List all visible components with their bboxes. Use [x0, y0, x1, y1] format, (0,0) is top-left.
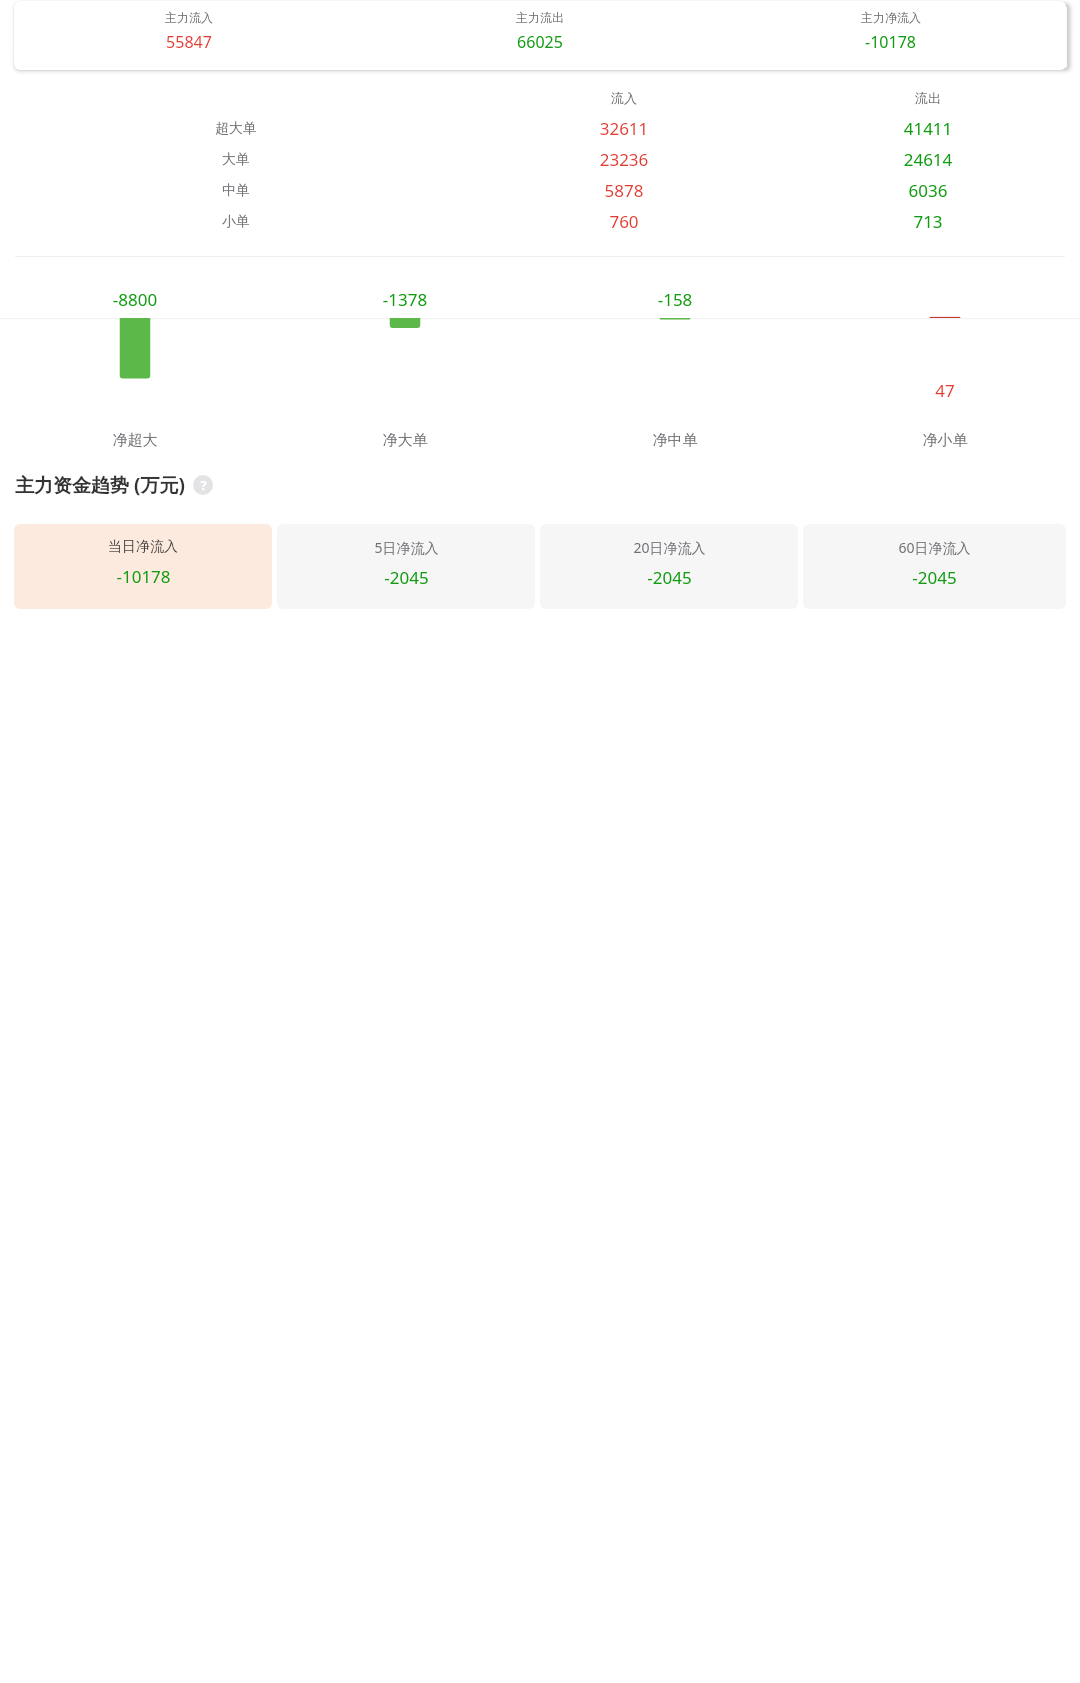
staticText: 主力净流入 — [861, 10, 921, 25]
staticText: 当日净流入 — [108, 538, 178, 556]
staticText: 流入 — [472, 90, 776, 106]
staticText: 大单 — [222, 151, 250, 169]
staticText: 主力资金趋势 (万元) — [15, 472, 185, 498]
staticText: 24614 — [776, 148, 1080, 171]
staticText: 超大单 — [215, 120, 257, 138]
button[interactable]: 大单 — [0, 144, 1080, 175]
staticText: 66025 — [517, 31, 563, 53]
staticText: 55847 — [166, 31, 212, 53]
staticText: 净超大 — [0, 431, 270, 450]
button[interactable]: 当日净流入 — [14, 524, 272, 609]
staticText: -10178 — [865, 31, 916, 53]
staticText: -158 — [540, 288, 810, 311]
staticText: 净大单 — [270, 431, 540, 450]
staticText: 中单 — [222, 182, 250, 200]
staticText: 5878 — [472, 179, 776, 202]
staticText: 23236 — [472, 148, 776, 171]
staticText: 小单 — [222, 213, 250, 231]
button[interactable]: 60日净流入 — [803, 524, 1066, 609]
staticText: 760 — [472, 210, 776, 233]
button[interactable]: 主力流入 — [14, 1, 1066, 70]
button[interactable]: 超大单 — [0, 113, 1080, 144]
staticText: 5日净流入 — [374, 538, 439, 557]
staticText: 6036 — [776, 179, 1080, 202]
staticText: 41411 — [776, 117, 1080, 140]
staticText: 47 — [810, 379, 1080, 397]
staticText: 20日净流入 — [633, 538, 706, 557]
staticText: ? — [200, 476, 207, 494]
button[interactable]: 帮助 — [193, 475, 213, 495]
staticText: -2045 — [647, 566, 692, 589]
staticText: 32611 — [472, 117, 776, 140]
staticText: -1378 — [270, 288, 540, 311]
staticText: 60日净流入 — [898, 538, 971, 557]
staticText: -2045 — [384, 566, 429, 589]
staticText: -10178 — [116, 565, 171, 588]
staticText: 流出 — [776, 90, 1080, 106]
staticText: 净中单 — [540, 431, 810, 450]
staticText: 主力流出 — [516, 10, 564, 25]
staticText: -8800 — [0, 288, 270, 311]
button[interactable]: 20日净流入 — [540, 524, 798, 609]
button[interactable]: 小单 — [0, 206, 1080, 237]
staticText: -2045 — [912, 566, 957, 589]
button[interactable]: 5日净流入 — [277, 524, 535, 609]
button[interactable]: 中单 — [0, 175, 1080, 206]
staticText: 净小单 — [810, 431, 1080, 450]
staticText: 713 — [776, 210, 1080, 233]
staticText: 主力流入 — [165, 10, 213, 25]
